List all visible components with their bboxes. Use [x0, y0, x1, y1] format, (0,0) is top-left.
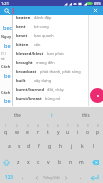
staticText: z — [17, 159, 20, 166]
button[interactable]: t — [35, 107, 69, 122]
button[interactable]: c — [33, 154, 43, 170]
button[interactable]: bitten — [13, 40, 88, 49]
button[interactable]: brought — [13, 58, 88, 67]
button[interactable]: Enter — [85, 170, 103, 183]
button[interactable]: beaten — [13, 13, 88, 22]
staticText: k — [81, 143, 84, 150]
button[interactable]: v — [43, 154, 54, 170]
staticText: g — [48, 143, 52, 150]
button[interactable]: the — [0, 107, 35, 122]
staticText: 89% — [94, 1, 102, 6]
staticText: cắn — [34, 42, 41, 47]
button[interactable]: burnt/burned — [13, 85, 88, 94]
button[interactable]: this — [69, 107, 103, 122]
button[interactable]: 7 — [63, 122, 73, 138]
button[interactable]: l — [88, 138, 99, 154]
button[interactable]: a — [4, 138, 14, 154]
button[interactable]: x — [23, 154, 33, 170]
staticText: this — [82, 112, 90, 118]
button[interactable]: broadcast — [13, 67, 88, 76]
staticText: , — [22, 174, 24, 180]
staticText: phát thanh, phát sóng — [40, 69, 81, 74]
staticText: d — [27, 143, 31, 150]
button[interactable]: 123 — [0, 170, 18, 183]
button[interactable]: beset — [13, 31, 88, 40]
staticText: t — [51, 112, 53, 118]
staticText: 8 — [77, 124, 79, 128]
staticText: t — [47, 129, 49, 136]
staticText: c — [37, 159, 40, 166]
button[interactable]: Tiếng Việt — [27, 170, 76, 183]
staticText: 4 — [37, 124, 39, 128]
button[interactable]: f — [34, 138, 44, 154]
staticText: n — [69, 159, 73, 166]
button[interactable]: j — [66, 138, 77, 154]
staticText: 1 — [5, 124, 7, 128]
button[interactable]: 4 — [33, 122, 43, 138]
staticText: Cách — [1, 64, 11, 69]
button[interactable]: g — [44, 138, 55, 154]
staticText: be — [4, 97, 11, 105]
staticText: be — [4, 72, 11, 80]
button[interactable]: 6 — [53, 122, 63, 138]
staticText: v — [47, 159, 50, 166]
button[interactable]: burst/breast — [13, 94, 88, 103]
staticText: 2 — [16, 124, 18, 128]
staticText: ban phúc — [47, 51, 65, 56]
staticText: w — [15, 129, 19, 136]
button[interactable]: built — [13, 76, 88, 85]
staticText: (1 / — [1, 51, 7, 56]
staticText: f — [38, 143, 40, 150]
staticText: beaten — [16, 15, 31, 21]
staticText: Nguy — [1, 34, 12, 39]
button[interactable]: h — [55, 138, 66, 154]
button[interactable]: 1 — [0, 122, 11, 138]
staticText: x — [27, 159, 30, 166]
staticText: m — [79, 159, 84, 166]
button[interactable]: d — [24, 138, 34, 154]
button[interactable]: Clear search — [93, 8, 98, 13]
button[interactable]: Shift — [0, 154, 13, 170]
staticText: r — [37, 129, 40, 136]
staticText: b — [58, 159, 62, 166]
staticText: o — [86, 129, 90, 136]
button[interactable]: Backspace — [87, 154, 103, 170]
staticText: 7 — [67, 124, 69, 128]
button[interactable]: 8 — [73, 122, 83, 138]
staticText: bitten — [16, 42, 31, 48]
button[interactable]: . — [76, 170, 85, 183]
button[interactable]: Speak — [90, 88, 103, 103]
staticText: h — [59, 143, 63, 150]
staticText: 3 — [27, 124, 29, 128]
button[interactable]: b — [54, 154, 65, 170]
staticText: burnt/burned — [16, 87, 44, 93]
button[interactable]: k — [77, 138, 88, 154]
staticText: mang đến — [36, 60, 55, 65]
button[interactable]: 0 — [93, 122, 103, 138]
staticText: bẻ cong — [34, 24, 49, 29]
staticText: l — [93, 143, 95, 150]
button[interactable]: 5 — [43, 122, 53, 138]
staticText: y — [57, 129, 60, 136]
button[interactable]: z — [13, 154, 23, 170]
button[interactable]: Search — [4, 8, 10, 14]
button[interactable]: 9 — [83, 122, 93, 138]
staticText: 6 — [57, 124, 59, 128]
staticText: i — [77, 129, 79, 136]
staticText: 0 — [97, 124, 99, 128]
button[interactable]: blessed/blest — [13, 49, 88, 58]
staticText: . — [80, 174, 82, 180]
button[interactable]: bent — [13, 22, 88, 31]
staticText: be — [4, 42, 11, 50]
button[interactable]: 3 — [22, 122, 33, 138]
staticText: beset — [16, 33, 31, 39]
staticText: p — [96, 129, 100, 136]
button[interactable]: 2 — [11, 122, 22, 138]
button[interactable]: , — [18, 170, 27, 183]
staticText: u — [66, 129, 70, 136]
staticText: j — [71, 143, 73, 150]
staticText: s — [18, 143, 21, 150]
button[interactable]: n — [65, 154, 76, 170]
button[interactable]: s — [14, 138, 24, 154]
button[interactable]: m — [76, 154, 87, 170]
